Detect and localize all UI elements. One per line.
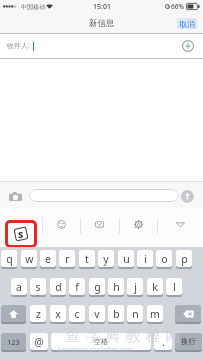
- button[interactable]: o: [156, 250, 172, 267]
- button[interactable]: 空格: [51, 333, 151, 350]
- button[interactable]: q: [1, 250, 17, 267]
- staticText: 查字典教程网: [63, 327, 183, 346]
- staticText: q: [6, 252, 13, 266]
- button[interactable]: .: [154, 333, 172, 350]
- button[interactable]: t: [79, 250, 95, 267]
- button[interactable]: a: [11, 278, 27, 295]
- button[interactable]: x: [50, 305, 66, 322]
- button[interactable]: m: [147, 305, 163, 322]
- staticText: h: [113, 280, 120, 294]
- button[interactable]: r: [59, 250, 75, 267]
- staticText: jiaocheng.chazidian.com: [58, 345, 134, 354]
- staticText: u: [123, 252, 130, 266]
- staticText: d: [55, 280, 62, 294]
- button[interactable]: p: [176, 250, 192, 267]
- button[interactable]: s: [30, 278, 46, 295]
- staticText: 空格: [94, 337, 108, 346]
- staticText: 123: [7, 337, 20, 347]
- button[interactable]: Hide keyboard: [157, 208, 203, 247]
- staticText: S: [18, 228, 24, 240]
- button[interactable]: u: [118, 250, 134, 267]
- button[interactable]: 换行: [175, 333, 202, 350]
- button[interactable]: Settings: [119, 208, 157, 247]
- button[interactable]: @: [30, 333, 48, 350]
- staticText: p: [181, 252, 188, 266]
- staticText: j: [134, 280, 137, 294]
- staticText: 换行: [181, 337, 196, 346]
- button[interactable]: v: [89, 305, 105, 322]
- button[interactable]: Input panel: [80, 208, 119, 247]
- button[interactable]: Shift: [1, 305, 26, 322]
- staticText: 15:01: [93, 2, 111, 12]
- staticText: z: [36, 307, 41, 321]
- staticText: n: [132, 307, 139, 321]
- staticText: g: [94, 280, 101, 294]
- staticText: w: [25, 252, 34, 266]
- button[interactable]: 取消: [177, 18, 197, 29]
- staticText: 取消: [179, 19, 195, 29]
- button[interactable]: n: [127, 305, 143, 322]
- button[interactable]: [29, 189, 179, 202]
- button[interactable]: w: [21, 250, 37, 267]
- staticText: l: [173, 280, 176, 294]
- staticText: 收件人:: [7, 41, 30, 51]
- button[interactable]: h: [108, 278, 124, 295]
- button[interactable]: f: [69, 278, 85, 295]
- staticText: a: [16, 280, 22, 294]
- staticText: r: [65, 252, 70, 266]
- staticText: c: [74, 307, 80, 321]
- staticText: 66%: [171, 2, 184, 11]
- button[interactable]: l: [166, 278, 182, 295]
- staticText: k: [152, 280, 158, 294]
- staticText: i: [144, 252, 147, 266]
- button[interactable]: d: [50, 278, 66, 295]
- button[interactable]: k: [147, 278, 163, 295]
- button[interactable]: y: [98, 250, 114, 267]
- button[interactable]: Backspace: [175, 305, 201, 322]
- staticText: f: [75, 280, 79, 294]
- button[interactable]: Emoji: [42, 208, 80, 247]
- button[interactable]: Send: [180, 189, 194, 203]
- button[interactable]: j: [127, 278, 143, 295]
- staticText: @: [34, 335, 44, 349]
- staticText: o: [161, 252, 168, 266]
- staticText: v: [94, 307, 100, 321]
- button[interactable]: b: [108, 305, 124, 322]
- staticText: .: [162, 335, 165, 349]
- button[interactable]: c: [69, 305, 85, 322]
- staticText: e: [45, 252, 51, 266]
- staticText: b: [113, 307, 120, 321]
- staticText: 中国移动: [21, 3, 45, 11]
- button[interactable]: z: [30, 305, 46, 322]
- staticText: t: [85, 252, 89, 266]
- staticText: 新信息: [89, 18, 115, 29]
- button[interactable]: Add recipient: [180, 38, 196, 54]
- button[interactable]: i: [137, 250, 153, 267]
- button[interactable]: Camera: [7, 188, 23, 204]
- staticText: m: [150, 307, 160, 321]
- button[interactable]: Sogou input method: [0, 208, 42, 247]
- button[interactable]: 123: [1, 333, 26, 350]
- staticText: s: [35, 280, 41, 294]
- button[interactable]: e: [40, 250, 56, 267]
- button[interactable]: g: [89, 278, 105, 295]
- staticText: x: [55, 307, 61, 321]
- staticText: y: [103, 252, 109, 266]
